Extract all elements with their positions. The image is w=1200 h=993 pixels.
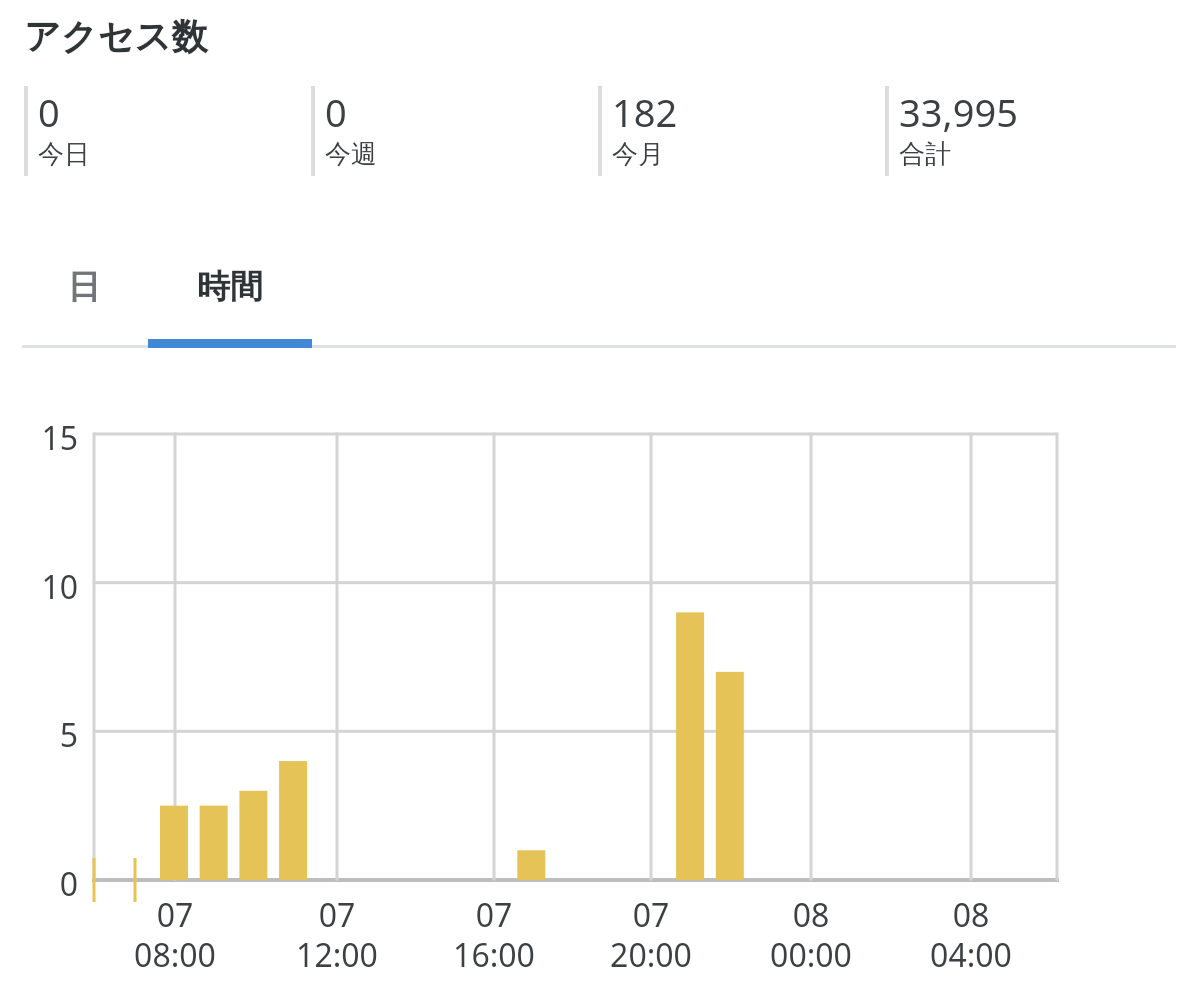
staticText: 10 <box>0 565 78 609</box>
button[interactable]: 182 <box>598 86 878 178</box>
staticText: 07 <box>414 893 574 937</box>
other: Hourly access chart <box>0 0 1200 993</box>
staticText: 07 <box>257 893 417 937</box>
staticText: 今週 <box>325 138 377 171</box>
staticText: 33,995 <box>899 86 1018 138</box>
staticText: 04:00 <box>891 933 1051 977</box>
staticText: 08:00 <box>95 933 255 977</box>
button[interactable]: 33,995 <box>885 86 1165 178</box>
staticText: 08 <box>891 893 1051 937</box>
button[interactable]: 0 <box>24 86 304 178</box>
staticText: 時間 <box>148 266 312 308</box>
staticText: 5 <box>0 713 78 757</box>
staticText: 16:00 <box>414 933 574 977</box>
staticText: 00:00 <box>731 933 891 977</box>
staticText: 今月 <box>612 138 664 171</box>
staticText: 0 <box>0 862 78 906</box>
staticText: 0 <box>38 86 60 138</box>
staticText: 日 <box>20 266 148 308</box>
staticText: 今日 <box>38 138 90 171</box>
staticText: 12:00 <box>257 933 417 977</box>
staticText: 07 <box>95 893 255 937</box>
staticText: 合計 <box>899 138 951 171</box>
staticText: 07 <box>571 893 731 937</box>
staticText: アクセス数 <box>24 14 208 59</box>
button[interactable]: 時間 <box>148 248 312 346</box>
button[interactable]: 0 <box>311 86 591 178</box>
staticText: 15 <box>0 416 78 460</box>
staticText: 20:00 <box>571 933 731 977</box>
staticText: 08 <box>731 893 891 937</box>
staticText: 182 <box>612 86 678 138</box>
button[interactable]: 日 <box>20 248 148 346</box>
staticText: 0 <box>325 86 347 138</box>
